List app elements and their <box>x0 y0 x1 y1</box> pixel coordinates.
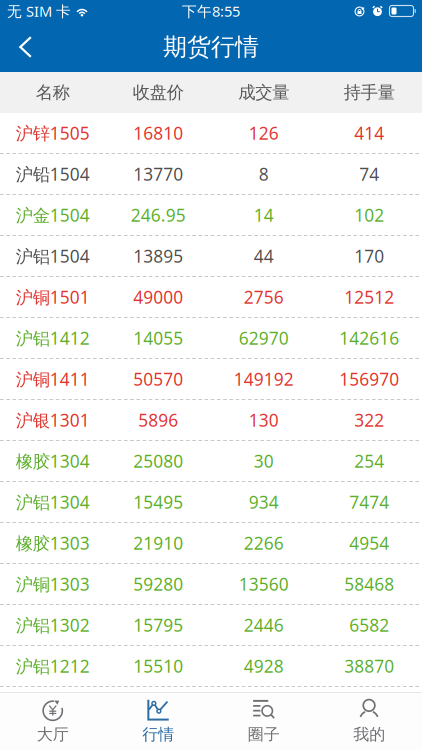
staticText: 圈子 <box>248 725 280 744</box>
staticText: 期货行情 <box>163 32 259 62</box>
staticText: 13560 <box>239 572 289 595</box>
staticText: 246.95 <box>131 203 186 226</box>
staticText: 130 <box>249 408 279 431</box>
staticText: 44 <box>254 244 274 267</box>
staticText: 沪金1504 <box>16 203 90 226</box>
staticText: 38870 <box>344 654 394 677</box>
staticText: 16810 <box>133 121 183 144</box>
staticText: 62970 <box>239 326 289 349</box>
staticText: 2446 <box>244 613 284 636</box>
staticText: 沪铅1504 <box>16 162 90 185</box>
staticText: 21910 <box>133 531 183 554</box>
button[interactable]: 大厅 <box>0 693 105 750</box>
button[interactable]: 沪铝1412 <box>0 318 422 359</box>
staticText: 2756 <box>244 285 284 308</box>
staticText: 156970 <box>339 367 399 390</box>
staticText: 59280 <box>133 572 183 595</box>
staticText: 沪银1301 <box>16 408 90 431</box>
staticText: 橡胶1304 <box>16 449 90 472</box>
staticText: 行情 <box>142 725 174 744</box>
staticText: 沪铝1304 <box>16 490 90 513</box>
staticText: 414 <box>354 121 384 144</box>
staticText: 15510 <box>133 654 183 677</box>
staticText: 橡胶1303 <box>16 531 90 554</box>
button[interactable]: 行情 <box>105 693 211 750</box>
button[interactable]: 橡胶1303 <box>0 523 422 564</box>
staticText: 25080 <box>133 449 183 472</box>
button[interactable]: 沪铝1212 <box>0 646 422 687</box>
button[interactable]: 返回 <box>0 22 48 72</box>
staticText: 15495 <box>133 490 183 513</box>
staticText: 149192 <box>234 367 294 390</box>
button[interactable]: 橡胶1304 <box>0 441 422 482</box>
staticText: 50570 <box>133 367 183 390</box>
staticText: 254 <box>354 449 384 472</box>
staticText: 934 <box>249 490 279 513</box>
button[interactable]: 沪铅1504 <box>0 154 422 195</box>
staticText: 沪铜1501 <box>16 285 90 308</box>
staticText: 142616 <box>339 326 399 349</box>
staticText: 8 <box>259 162 269 185</box>
staticText: 无 SIM 卡 <box>7 1 71 21</box>
staticText: 126 <box>249 121 279 144</box>
staticText: 沪铝1504 <box>16 244 90 267</box>
button[interactable]: 沪铜1303 <box>0 564 422 605</box>
staticText: 4928 <box>244 654 284 677</box>
staticText: 沪铝1212 <box>16 654 90 677</box>
button[interactable]: 沪锌1505 <box>0 113 422 154</box>
staticText: 6582 <box>349 613 389 636</box>
staticText: 沪铝1302 <box>16 613 90 636</box>
staticText: 沪铜1303 <box>16 572 90 595</box>
button[interactable]: 沪铜1501 <box>0 277 422 318</box>
staticText: 170 <box>354 244 384 267</box>
button[interactable]: 沪铝1302 <box>0 605 422 646</box>
staticText: 沪铝1412 <box>16 326 90 349</box>
staticText: 我的 <box>353 725 385 744</box>
button[interactable]: 沪铝1504 <box>0 236 422 277</box>
staticText: 13770 <box>133 162 183 185</box>
staticText: 沪铜1411 <box>16 367 90 390</box>
staticText: 成交量 <box>238 82 289 103</box>
staticText: 12512 <box>344 285 394 308</box>
staticText: 49000 <box>133 285 183 308</box>
staticText: 30 <box>254 449 274 472</box>
staticText: 7474 <box>349 490 389 513</box>
staticText: 名称 <box>36 82 70 103</box>
button[interactable]: 我的 <box>316 693 422 750</box>
staticText: 58468 <box>344 572 394 595</box>
staticText: 14055 <box>133 326 183 349</box>
staticText: 13895 <box>133 244 183 267</box>
button[interactable]: 沪铝1304 <box>0 482 422 523</box>
staticText: 14 <box>254 203 274 226</box>
staticText: 102 <box>354 203 384 226</box>
button[interactable]: 沪金1504 <box>0 195 422 236</box>
staticText: 5896 <box>138 408 178 431</box>
staticText: 15795 <box>133 613 183 636</box>
button[interactable]: 圈子 <box>211 693 316 750</box>
staticText: 74 <box>359 162 379 185</box>
staticText: 大厅 <box>37 725 69 744</box>
staticText: 322 <box>354 408 384 431</box>
staticText: 2266 <box>244 531 284 554</box>
button[interactable]: 沪银1301 <box>0 400 422 441</box>
staticText: 持手量 <box>344 82 395 103</box>
staticText: 沪锌1505 <box>16 121 90 144</box>
staticText: 4954 <box>349 531 389 554</box>
button[interactable]: 沪铜1411 <box>0 359 422 400</box>
staticText: 收盘价 <box>133 82 184 103</box>
staticText: 下午8:55 <box>182 1 240 21</box>
